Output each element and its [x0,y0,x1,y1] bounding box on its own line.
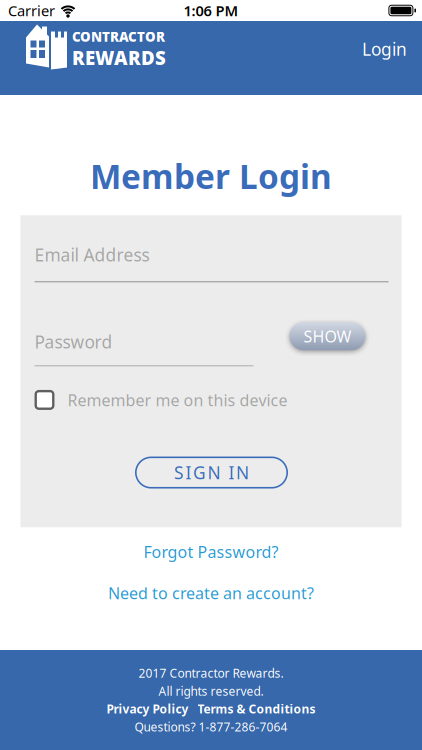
button[interactable]: Login [362,37,407,60]
staticText: Email Address [34,243,149,266]
staticText: 1:06 PM [183,1,238,20]
staticText: CONTRACTOR [72,28,165,45]
button[interactable]: CONTRACTOR [26,23,166,74]
button[interactable]: SIGN IN [135,456,288,488]
staticText: Forgot Password? [143,541,278,562]
staticText: Member Login [90,154,332,198]
staticText: Password [34,330,112,353]
staticText: Remember me on this device [67,389,287,410]
staticText: Login [362,37,407,60]
staticText: All rights reserved. [158,683,263,699]
button[interactable]: Email Address [34,243,388,282]
button[interactable]: Questions? 1-877-286-7064 [134,719,287,735]
staticText: SIGN IN [174,461,249,484]
button[interactable]: Remember me on this device [34,389,287,410]
button[interactable]: Forgot Password? [143,541,278,562]
button[interactable]: SHOW [289,322,365,350]
staticText: SHOW [303,326,351,347]
staticText: REWARDS [72,45,166,70]
staticText: Need to create an account? [108,582,314,604]
staticText: Carrier [8,1,55,20]
button[interactable]: Privacy Policy [106,701,188,717]
button[interactable]: Password [34,330,112,353]
button[interactable]: Terms & Conditions [197,701,315,717]
staticText: Questions? 1-877-286-7064 [134,719,287,735]
button[interactable]: Need to create an account? [108,582,314,604]
staticText: 2017 Contractor Rewards. [138,665,283,681]
staticText: Privacy Policy [106,701,188,717]
staticText: Terms & Conditions [197,701,315,717]
